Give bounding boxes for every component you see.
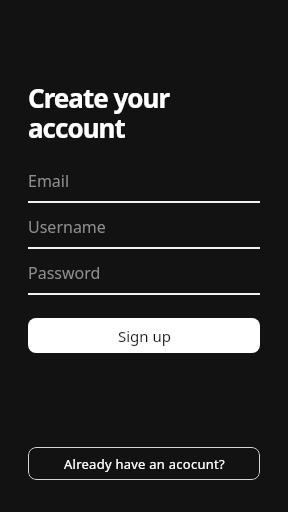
staticText: Email [28, 170, 70, 192]
button[interactable]: Password [28, 262, 260, 295]
staticText: Already have an acocunt? [64, 455, 225, 473]
staticText: Sign up [118, 326, 171, 346]
button[interactable]: Username [28, 216, 260, 249]
button[interactable]: Email [28, 170, 260, 203]
staticText: Create your account [28, 80, 170, 146]
staticText: Username [28, 216, 106, 238]
staticText: Password [28, 262, 101, 284]
button[interactable]: Sign up [28, 318, 260, 353]
button[interactable]: Already have an acocunt? [28, 447, 260, 480]
